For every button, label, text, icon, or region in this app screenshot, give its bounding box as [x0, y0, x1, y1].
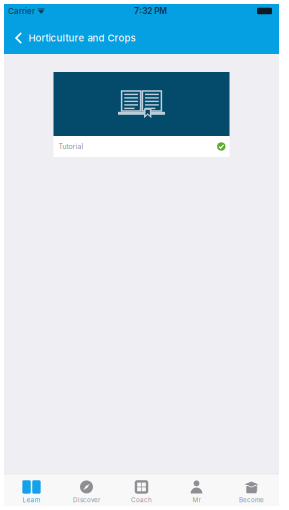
staticText: Tutorial	[58, 142, 83, 151]
staticText: Become	[239, 496, 264, 504]
button[interactable]: Coach	[114, 474, 169, 506]
button[interactable]: Become	[224, 474, 279, 506]
staticText: Horticulture and Crops	[28, 32, 135, 44]
button[interactable]: Learn	[4, 474, 59, 506]
button[interactable]: Tutorial	[53, 72, 229, 157]
staticText: Carrier	[8, 6, 35, 16]
staticText: Coach	[131, 496, 152, 504]
button[interactable]: Horticulture and Crops	[4, 18, 143, 54]
button[interactable]: Discover	[59, 474, 114, 506]
staticText: Discover	[73, 496, 100, 504]
button[interactable]: Mr	[169, 474, 224, 506]
staticText: 7:32 PM	[134, 6, 167, 16]
staticText: Mr	[192, 496, 200, 504]
staticText: Learn	[22, 496, 40, 504]
